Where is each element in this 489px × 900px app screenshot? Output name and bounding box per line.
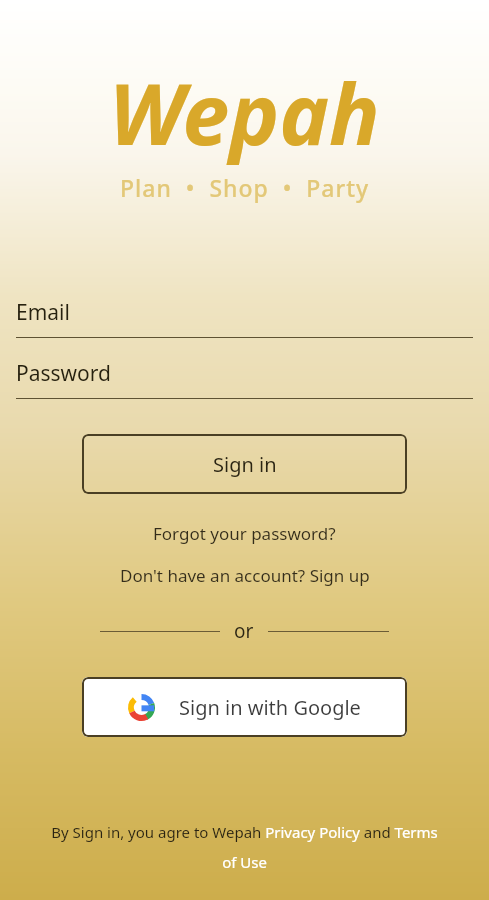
- button[interactable]: Sign in: [82, 434, 407, 494]
- staticText: Email: [16, 298, 70, 327]
- staticText: Sign in: [213, 451, 277, 478]
- staticText: Sign in with Google: [179, 694, 361, 721]
- button[interactable]: Don't have an account? Sign up: [112, 561, 378, 590]
- staticText: Password: [16, 359, 111, 388]
- button[interactable]: By Sign in, you agre to Wepah Privacy Po…: [48, 822, 441, 872]
- other: Google logo: [128, 694, 155, 721]
- button[interactable]: Password: [16, 359, 473, 399]
- button[interactable]: Email: [16, 298, 473, 338]
- staticText: Forgot your password?: [153, 522, 336, 545]
- button[interactable]: Forgot your password?: [145, 519, 344, 548]
- staticText: Wepah: [109, 55, 380, 169]
- button[interactable]: Google logo: [82, 677, 407, 737]
- staticText: Plan • Shop • Party: [120, 172, 370, 203]
- staticText: or: [234, 618, 254, 644]
- staticText: Don't have an account? Sign up: [120, 564, 370, 587]
- staticText: By Sign in, you agre to Wepah Privacy Po…: [48, 822, 441, 872]
